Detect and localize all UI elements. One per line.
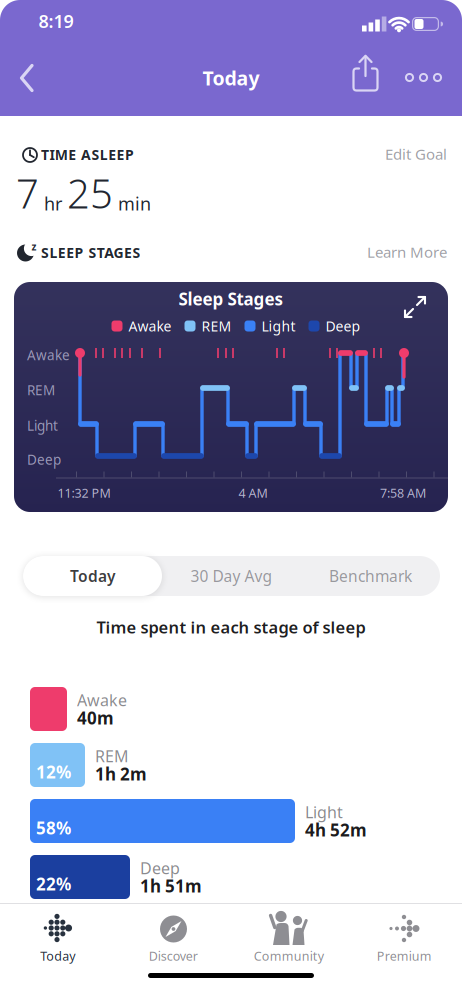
staticText: Light xyxy=(261,317,295,335)
button[interactable]: Share xyxy=(347,52,384,96)
button[interactable]: 30 Day Avg xyxy=(162,556,301,596)
staticText: REM xyxy=(27,381,55,399)
staticText: 4 AM xyxy=(238,485,267,501)
staticText: Sleep Stages xyxy=(178,288,283,310)
button[interactable]: More options xyxy=(398,65,449,89)
staticText: Light xyxy=(305,801,343,823)
staticText: Awake xyxy=(27,346,70,364)
button[interactable]: Benchmark xyxy=(301,556,440,596)
button[interactable]: Learn More xyxy=(367,242,447,262)
staticText: Edit Goal xyxy=(385,144,447,164)
staticText: 12% xyxy=(36,761,71,783)
button[interactable]: Today xyxy=(23,556,162,596)
staticText: Discover xyxy=(149,948,198,964)
staticText: TIME ASLEEP xyxy=(41,145,134,164)
button[interactable]: Premium xyxy=(346,904,462,970)
staticText: 25 xyxy=(67,166,113,219)
staticText: z xyxy=(31,240,36,253)
staticText: Community xyxy=(254,948,324,964)
staticText: Light xyxy=(27,416,58,434)
button[interactable]: Community xyxy=(231,904,346,970)
staticText: 40m xyxy=(77,707,114,729)
staticText: SLEEP STAGES xyxy=(41,243,140,262)
staticText: hr xyxy=(44,192,62,216)
staticText: 22% xyxy=(36,873,71,895)
staticText: 1h 2m xyxy=(95,763,147,785)
staticText: 4h 52m xyxy=(305,819,367,841)
staticText: Deep xyxy=(27,450,61,468)
button[interactable]: Expand chart xyxy=(402,294,428,320)
staticText: 7:58 AM xyxy=(380,485,426,501)
staticText: 1h 51m xyxy=(140,875,202,897)
staticText: Benchmark xyxy=(329,566,412,586)
staticText: Today xyxy=(70,566,115,586)
staticText: Awake xyxy=(128,317,171,335)
staticText: REM xyxy=(201,317,231,335)
staticText: Today xyxy=(202,65,259,91)
staticText: min xyxy=(118,192,151,216)
staticText: Deep xyxy=(140,857,180,879)
staticText: Learn More xyxy=(367,242,447,262)
button[interactable]: Today xyxy=(0,904,115,970)
staticText: REM xyxy=(95,745,129,767)
staticText: 30 Day Avg xyxy=(190,566,272,586)
staticText: Today xyxy=(40,948,75,964)
staticText: Premium xyxy=(377,948,432,964)
staticText: 8:19 xyxy=(38,9,73,33)
staticText: Time spent in each stage of sleep xyxy=(96,616,365,638)
button[interactable]: Edit Goal xyxy=(385,144,447,164)
button[interactable]: Discover xyxy=(115,904,231,970)
staticText: 7 xyxy=(16,166,39,219)
staticText: 58% xyxy=(36,817,71,839)
staticText: 11:32 PM xyxy=(57,485,110,501)
button[interactable]: Back xyxy=(8,56,52,100)
staticText: Deep xyxy=(325,317,360,335)
staticText: Awake xyxy=(77,689,127,711)
